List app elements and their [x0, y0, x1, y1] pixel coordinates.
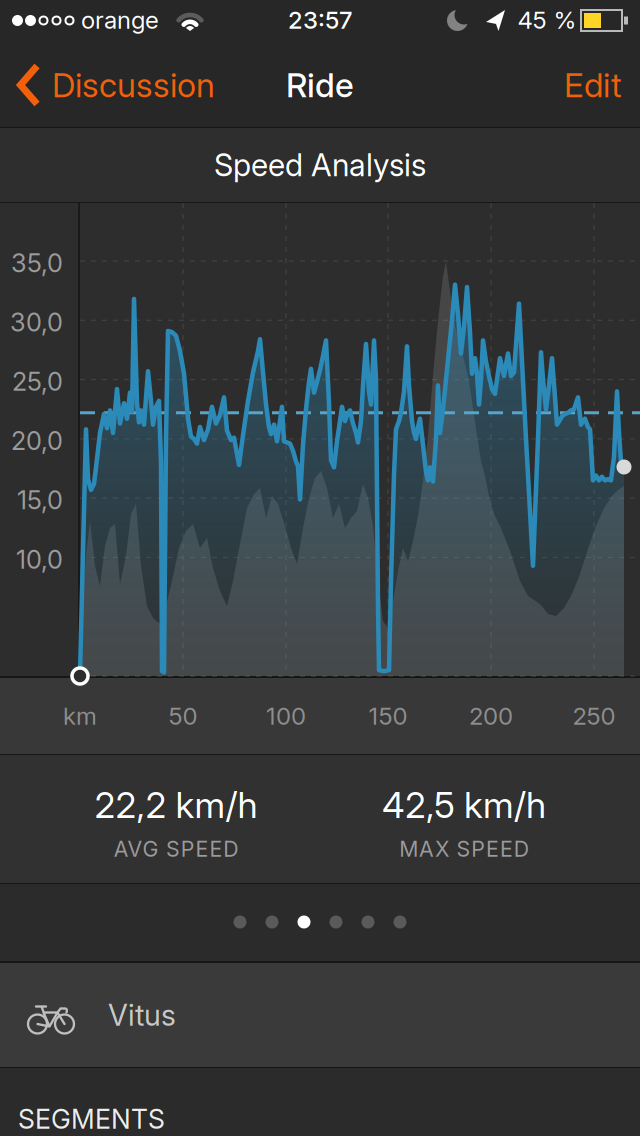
staticText: SEGMENTS [18, 1103, 165, 1135]
staticText: 25,0 [12, 367, 63, 396]
staticText: 250 [572, 702, 615, 730]
staticText: 20,0 [11, 426, 63, 456]
button[interactable]: Page 3 of 6 [233, 915, 406, 928]
staticText: 50 [168, 702, 197, 730]
staticText: 15,0 [17, 485, 63, 515]
staticText: 100 [266, 702, 306, 730]
staticText: Ride [286, 65, 354, 105]
button[interactable]: Edit [564, 65, 622, 105]
staticText: 35,0 [11, 248, 63, 278]
staticText: km [63, 702, 97, 730]
staticText: Vitus [108, 998, 176, 1032]
staticText: 30,0 [10, 307, 63, 337]
staticText: Speed Analysis [214, 147, 426, 183]
staticText: AVG SPEED [114, 836, 238, 862]
staticText: 10,0 [16, 544, 63, 574]
staticText: 45 % [517, 6, 576, 34]
staticText: 42,5 km/h [382, 784, 546, 826]
staticText: orange [81, 6, 159, 34]
staticText: 200 [469, 702, 513, 730]
staticText: 22,2 km/h [94, 784, 257, 826]
button[interactable]: Discussion [18, 64, 215, 106]
button[interactable]: Vitus [0, 963, 640, 1067]
staticText: Discussion [52, 65, 215, 105]
staticText: 150 [368, 702, 407, 730]
staticText: MAX SPEED [399, 836, 529, 862]
staticText: Edit [564, 65, 622, 105]
staticText: 23:57 [288, 6, 352, 34]
